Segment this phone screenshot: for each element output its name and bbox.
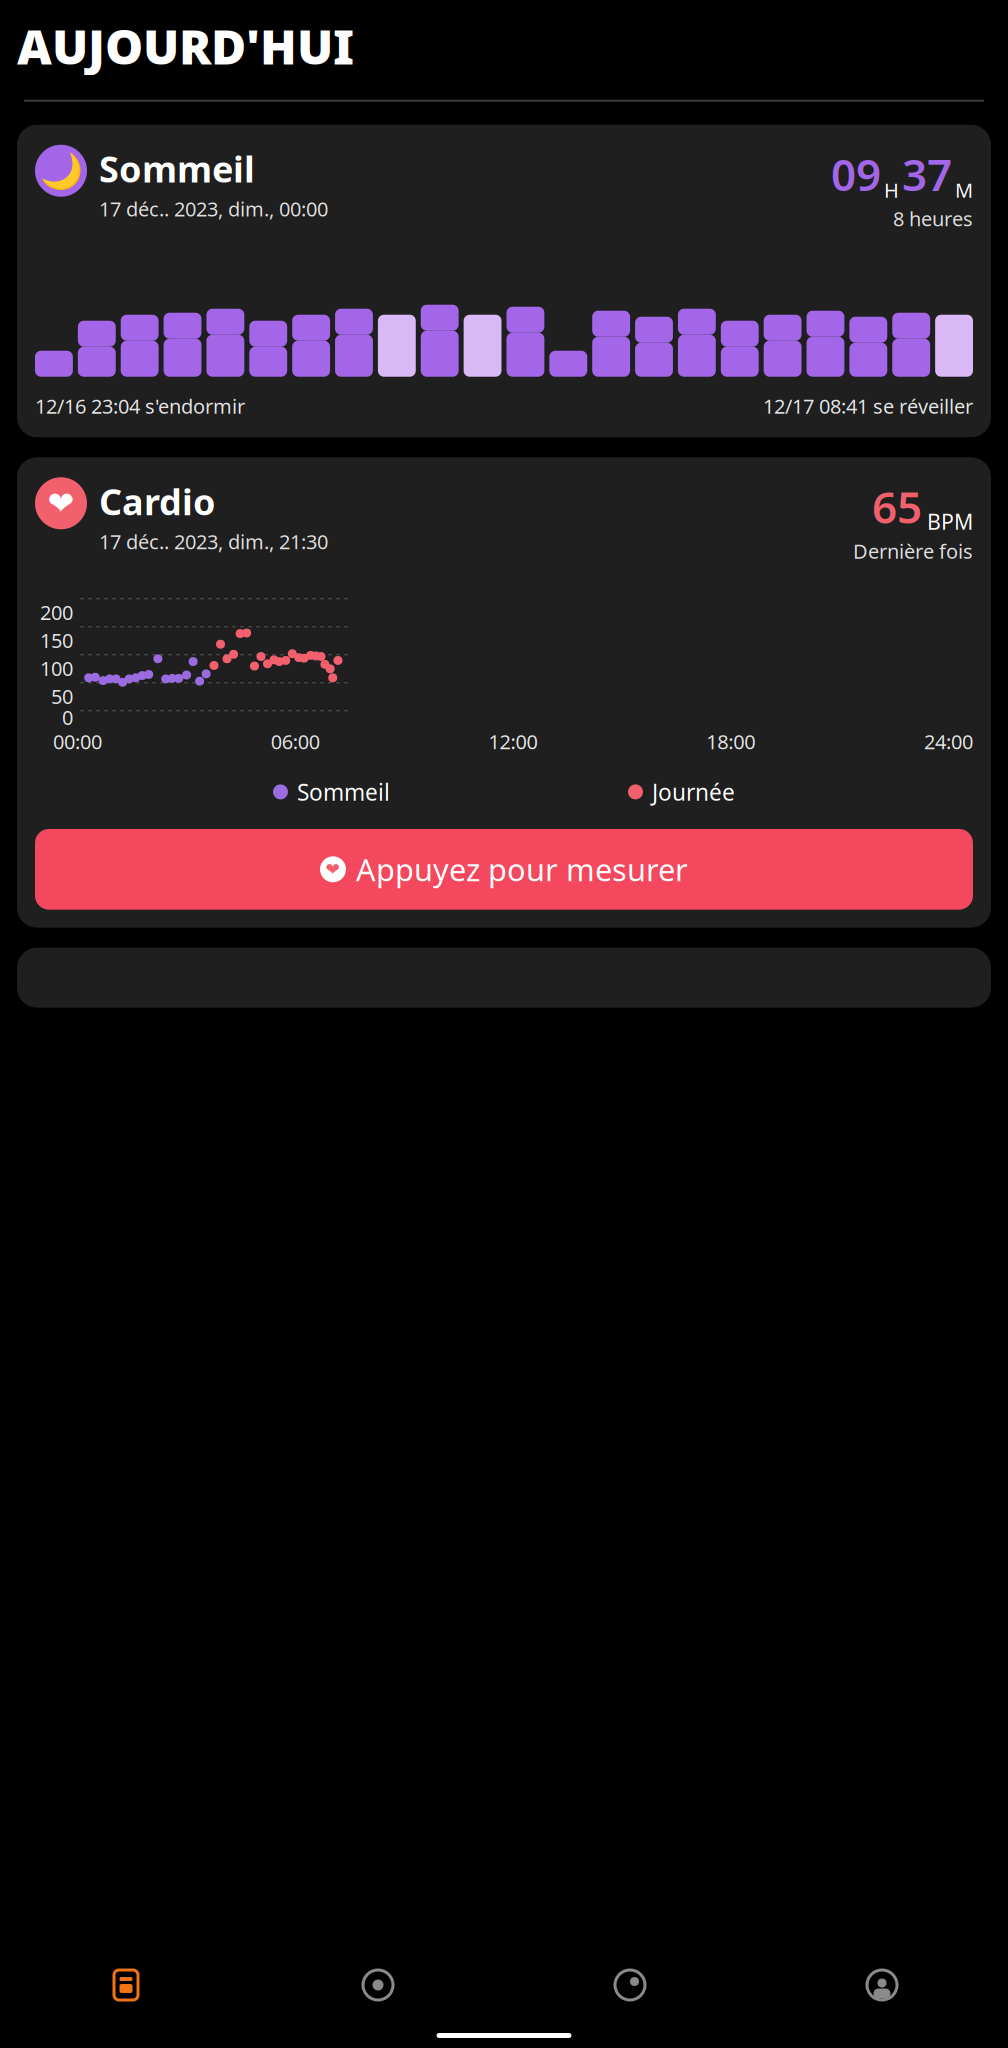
button[interactable]: Profil: [756, 1957, 1008, 2013]
staticText: 12/17 08:41 se réveiller: [763, 393, 973, 419]
staticText: 17 déc.. 2023, dim., 21:30: [99, 528, 328, 555]
staticText: BPM: [927, 507, 973, 536]
staticText: Cardio: [99, 477, 216, 525]
staticText: Appuyez pour mesurer: [356, 849, 688, 890]
staticText: 0: [62, 704, 73, 731]
button[interactable]: Aujourd'hui: [0, 1958, 252, 2012]
staticText: M: [955, 177, 973, 203]
button[interactable]: Sommeil: [504, 1957, 756, 2013]
staticText: 00:00: [53, 728, 102, 755]
staticText: ❤︎: [325, 859, 340, 879]
staticText: 65: [872, 477, 922, 536]
staticText: 24:00: [924, 728, 973, 755]
staticText: 17 déc.. 2023, dim., 00:00: [99, 195, 328, 222]
staticText: 12:00: [488, 728, 537, 755]
staticText: 12/16 23:04 s'endormir: [35, 393, 245, 419]
staticText: ❤︎: [47, 485, 74, 521]
staticText: 06:00: [271, 728, 320, 755]
staticText: Sommeil: [297, 777, 390, 807]
staticText: Dernière fois: [853, 538, 973, 564]
staticText: 100: [40, 655, 73, 682]
staticText: H: [884, 177, 899, 203]
button[interactable]: Activité: [252, 1958, 504, 2012]
staticText: Journée: [652, 777, 735, 807]
staticText: Sommeil: [99, 145, 255, 192]
staticText: 18:00: [706, 728, 755, 755]
staticText: AUJOURD'HUI: [17, 14, 354, 78]
button[interactable]: ❤︎: [35, 829, 973, 910]
staticText: 50: [51, 683, 73, 710]
staticText: 8 heures: [893, 205, 973, 232]
staticText: 37: [902, 145, 952, 203]
staticText: 🌙: [39, 151, 82, 190]
staticText: 09: [831, 145, 881, 203]
staticText: 150: [40, 627, 73, 654]
staticText: 200: [40, 599, 73, 626]
